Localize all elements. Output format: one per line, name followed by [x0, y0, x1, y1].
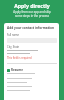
staticText: Apply directly	[0, 2, 64, 9]
staticText: Resume	[11, 68, 23, 72]
staticText: Add your contact information	[7, 26, 55, 30]
staticText: This field is required	[7, 56, 32, 60]
staticText: Full name	[7, 33, 19, 37]
staticText: City, State	[7, 45, 20, 49]
staticText: Apply from our app and skip some steps i…	[4, 10, 60, 17]
